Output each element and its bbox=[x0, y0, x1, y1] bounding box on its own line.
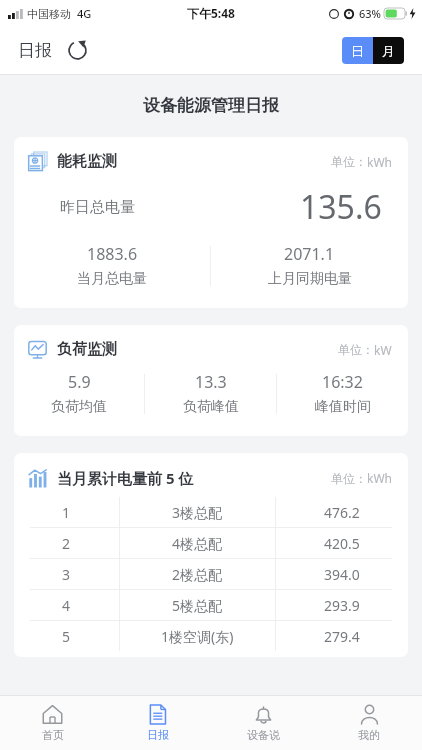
button[interactable]: 我的 bbox=[316, 696, 422, 750]
staticText: 4 bbox=[62, 596, 71, 615]
button[interactable]: 刷新 bbox=[58, 31, 96, 69]
staticText: 设备能源管理日报 bbox=[0, 95, 422, 116]
staticText: 我的 bbox=[358, 728, 380, 742]
staticText: 1楼空调(东) bbox=[161, 627, 234, 646]
button[interactable]: 2 bbox=[14, 528, 408, 558]
staticText: 2楼总配 bbox=[172, 565, 223, 584]
staticText: 当月累计电量前 5 位 bbox=[57, 468, 194, 488]
staticText: 负荷均值 bbox=[51, 398, 107, 416]
staticText: 3楼总配 bbox=[172, 503, 223, 522]
staticText: kWh bbox=[367, 154, 392, 170]
staticText: 能耗监测 bbox=[57, 152, 117, 171]
staticText: 日报 bbox=[147, 728, 169, 742]
staticText: 日报 bbox=[18, 40, 52, 61]
staticText: 16:32 bbox=[322, 371, 363, 393]
staticText: 单位： bbox=[338, 342, 374, 357]
staticText: kWh bbox=[367, 470, 392, 486]
staticText: kW bbox=[374, 342, 392, 358]
button[interactable]: 月 bbox=[373, 37, 404, 64]
staticText: 中国移动 bbox=[27, 7, 71, 21]
staticText: 4楼总配 bbox=[172, 534, 223, 553]
button[interactable]: 5 bbox=[14, 621, 408, 651]
staticText: 135.6 bbox=[300, 185, 382, 229]
staticText: 首页 bbox=[42, 728, 64, 742]
staticText: 上月同期电量 bbox=[268, 270, 352, 288]
staticText: 293.9 bbox=[324, 596, 360, 615]
staticText: 279.4 bbox=[324, 627, 360, 646]
staticText: 5 bbox=[62, 627, 71, 646]
button[interactable]: 1 bbox=[14, 497, 408, 527]
button[interactable]: 设备说 bbox=[210, 696, 316, 750]
staticText: 394.0 bbox=[324, 565, 360, 584]
staticText: 13.3 bbox=[195, 371, 227, 393]
staticText: 1883.6 bbox=[87, 243, 138, 265]
button[interactable]: 4 bbox=[14, 590, 408, 620]
staticText: 日 bbox=[351, 43, 364, 59]
staticText: 5楼总配 bbox=[172, 596, 223, 615]
staticText: 月 bbox=[382, 43, 395, 59]
staticText: 476.2 bbox=[324, 503, 360, 522]
staticText: 设备说 bbox=[247, 728, 280, 742]
button[interactable]: 首页 bbox=[0, 696, 105, 750]
staticText: 420.5 bbox=[324, 534, 360, 553]
staticText: 3 bbox=[62, 565, 71, 584]
staticText: 4G bbox=[77, 6, 92, 21]
staticText: 单位： bbox=[331, 471, 367, 486]
staticText: 峰值时间 bbox=[315, 398, 371, 416]
staticText: 当月总电量 bbox=[77, 270, 147, 288]
button[interactable]: 日 bbox=[342, 37, 373, 64]
staticText: 单位： bbox=[331, 154, 367, 169]
button[interactable]: 3 bbox=[14, 559, 408, 589]
staticText: 2071.1 bbox=[284, 243, 335, 265]
staticText: 2 bbox=[62, 534, 71, 553]
staticText: 负荷峰值 bbox=[183, 398, 239, 416]
staticText: 负荷监测 bbox=[57, 340, 117, 359]
button[interactable]: 日报 bbox=[0, 34, 58, 67]
staticText: 下午5:48 bbox=[187, 5, 235, 21]
staticText: 昨日总电量 bbox=[60, 198, 135, 217]
staticText: 5.9 bbox=[68, 371, 91, 393]
staticText: 1 bbox=[62, 503, 71, 522]
staticText: 63% bbox=[359, 6, 381, 21]
button[interactable]: 日报 bbox=[105, 696, 210, 750]
